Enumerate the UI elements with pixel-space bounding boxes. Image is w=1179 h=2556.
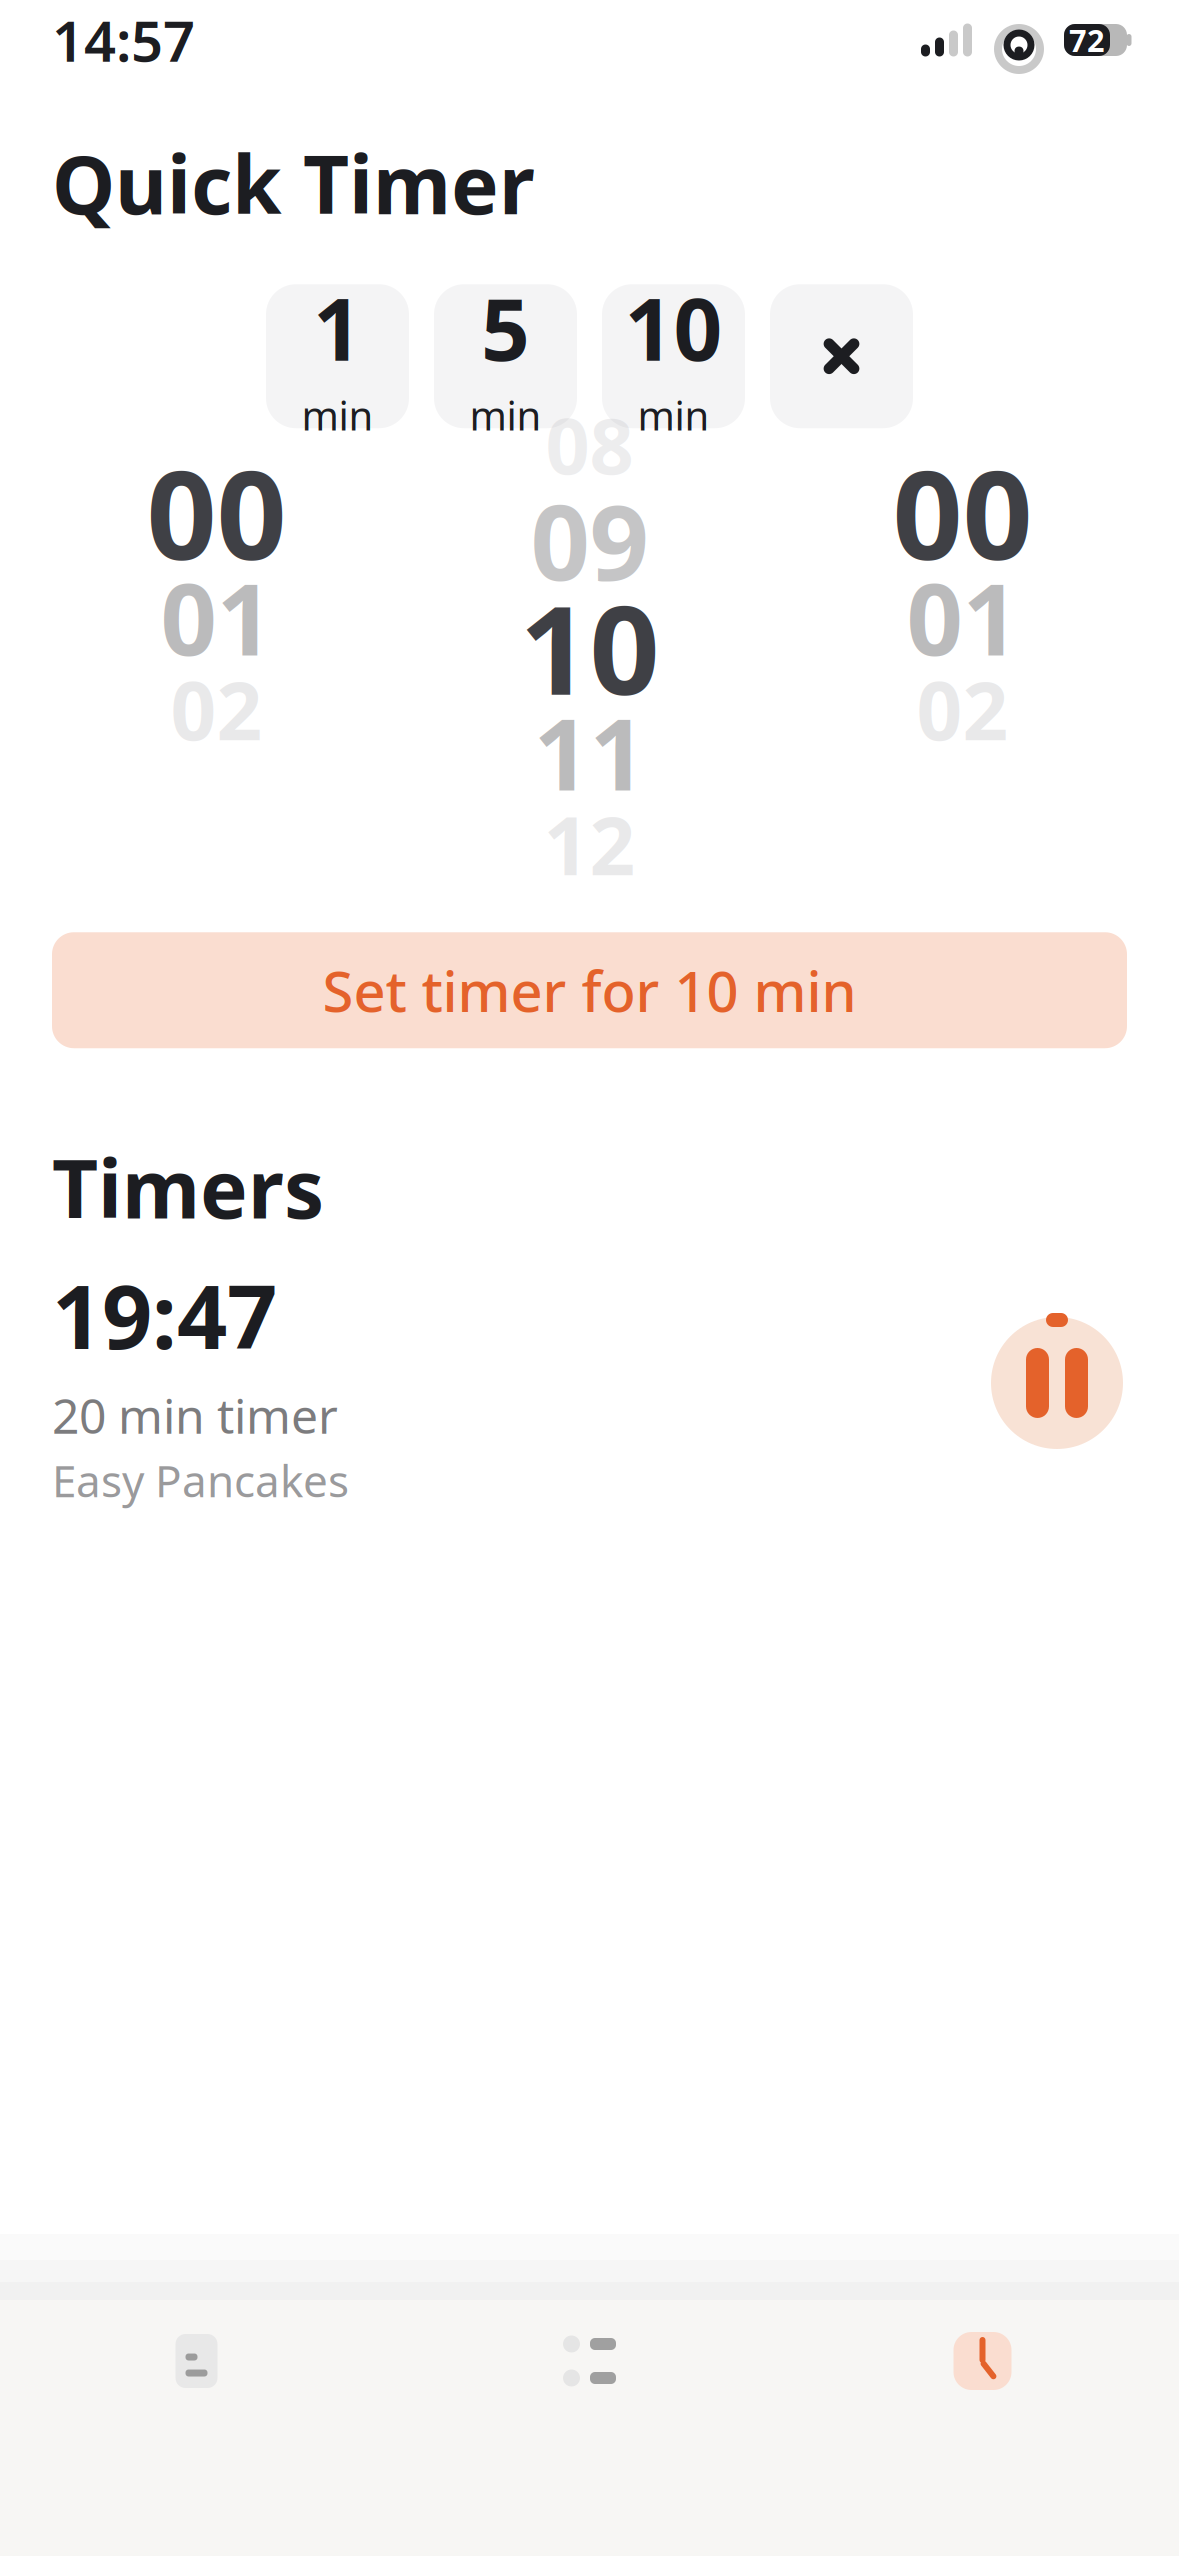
button[interactable]: Shopping list: [393, 2333, 786, 2389]
staticText: 02: [170, 656, 262, 762]
button[interactable]: Recipes: [0, 2333, 393, 2389]
staticText: Timers: [52, 1134, 324, 1240]
button[interactable]: 19:47: [0, 1240, 1179, 1509]
staticText: 14:57: [52, 3, 195, 77]
button[interactable]: 1: [266, 284, 409, 428]
button[interactable]: Set timer for 10 min: [52, 932, 1127, 1048]
staticText: 5: [481, 271, 530, 384]
button[interactable]: 10: [602, 284, 745, 428]
staticText: min: [469, 388, 541, 441]
staticText: 00: [892, 431, 1032, 594]
staticText: Quick Timer: [52, 130, 535, 236]
staticText: 10: [519, 566, 659, 729]
button[interactable]: 5: [434, 284, 577, 428]
staticText: 02: [916, 656, 1008, 762]
button[interactable]: Clear: [770, 284, 913, 428]
button[interactable]: Pause timer: [987, 1310, 1127, 1456]
staticText: 01: [906, 552, 1018, 683]
staticText: 20 min timer: [52, 1383, 338, 1447]
staticText: Easy Pancakes: [52, 1451, 349, 1509]
staticText: 08: [545, 393, 633, 496]
staticText: 19:47: [52, 1256, 277, 1373]
staticText: 00: [146, 431, 286, 594]
staticText: min: [637, 388, 709, 441]
staticText: 01: [160, 552, 272, 683]
staticText: 12: [543, 791, 635, 897]
staticText: 72: [1069, 20, 1105, 60]
staticText: 09: [530, 471, 648, 609]
staticText: min: [301, 388, 373, 441]
staticText: 11: [533, 687, 645, 818]
staticText: 10: [624, 271, 722, 384]
staticText: 1: [313, 271, 362, 384]
staticText: Set timer for 10 min: [322, 953, 856, 1027]
button[interactable]: Timers: [786, 2332, 1179, 2390]
